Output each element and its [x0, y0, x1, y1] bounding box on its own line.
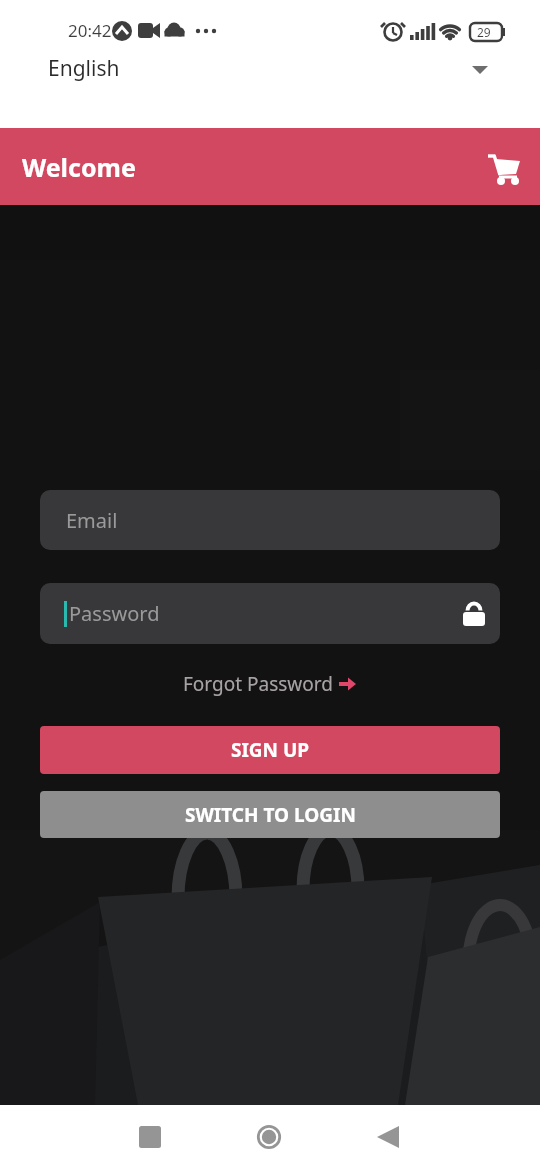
button[interactable]: Email — [40, 490, 500, 550]
staticText: 20:42 — [68, 19, 112, 42]
button[interactable]: SIGN UP — [40, 726, 500, 774]
button[interactable] — [482, 145, 526, 189]
staticText: 29 — [477, 24, 491, 40]
staticText: Welcome — [22, 150, 136, 184]
button[interactable]: Forgot Password — [183, 669, 357, 699]
button[interactable]: SWITCH TO LOGIN — [40, 791, 500, 838]
button[interactable] — [247, 1115, 291, 1159]
staticText: Email — [66, 507, 118, 534]
button[interactable]: Password — [40, 583, 500, 644]
staticText: English — [48, 54, 120, 82]
staticText: Forgot Password — [183, 671, 333, 697]
staticText: SWITCH TO LOGIN — [185, 802, 356, 828]
button[interactable]: English — [0, 48, 540, 128]
button[interactable] — [366, 1115, 410, 1159]
button[interactable] — [128, 1115, 172, 1159]
staticText: Password — [69, 600, 160, 627]
staticText: SIGN UP — [231, 737, 310, 763]
